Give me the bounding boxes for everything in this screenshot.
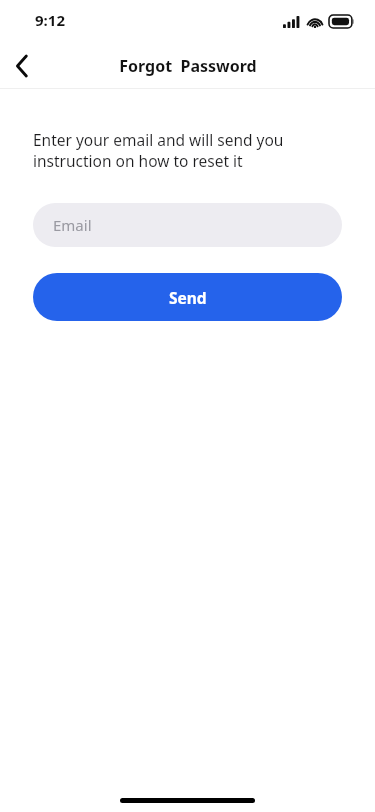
staticText: 9:12: [35, 10, 65, 30]
staticText: Send: [169, 287, 207, 308]
staticText: Forgot Password: [119, 55, 257, 77]
staticText: Enter your email and will send you instr…: [33, 129, 284, 172]
button[interactable]: Back: [0, 44, 44, 88]
button[interactable]: Email: [33, 203, 342, 247]
staticText: Email: [53, 215, 92, 235]
button[interactable]: Send: [33, 273, 342, 321]
